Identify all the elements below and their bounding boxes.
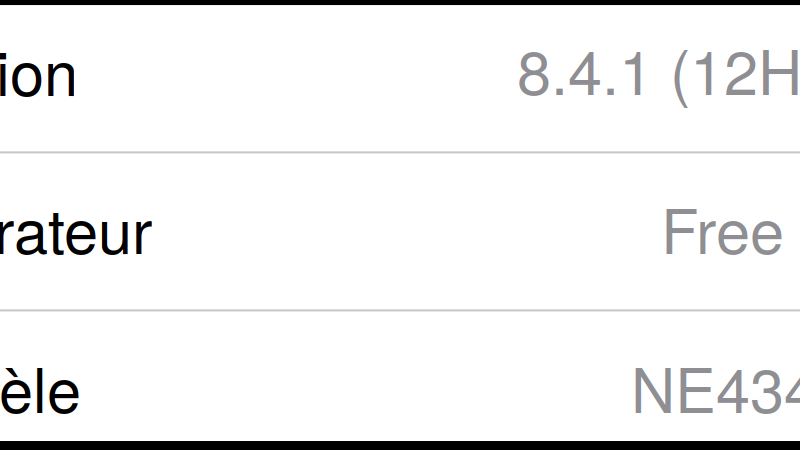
button[interactable]: Version [0,6,800,151]
staticText: Modèle [0,343,81,430]
button[interactable]: Opérateur [0,154,800,309]
staticText: Opérateur [0,184,152,271]
button[interactable]: Modèle [0,312,800,441]
staticText: Version [0,26,78,113]
staticText: 8.4.1 (12H321) [517,25,800,112]
staticText: NE434ZD/A [631,343,800,430]
staticText: Free [661,184,784,271]
